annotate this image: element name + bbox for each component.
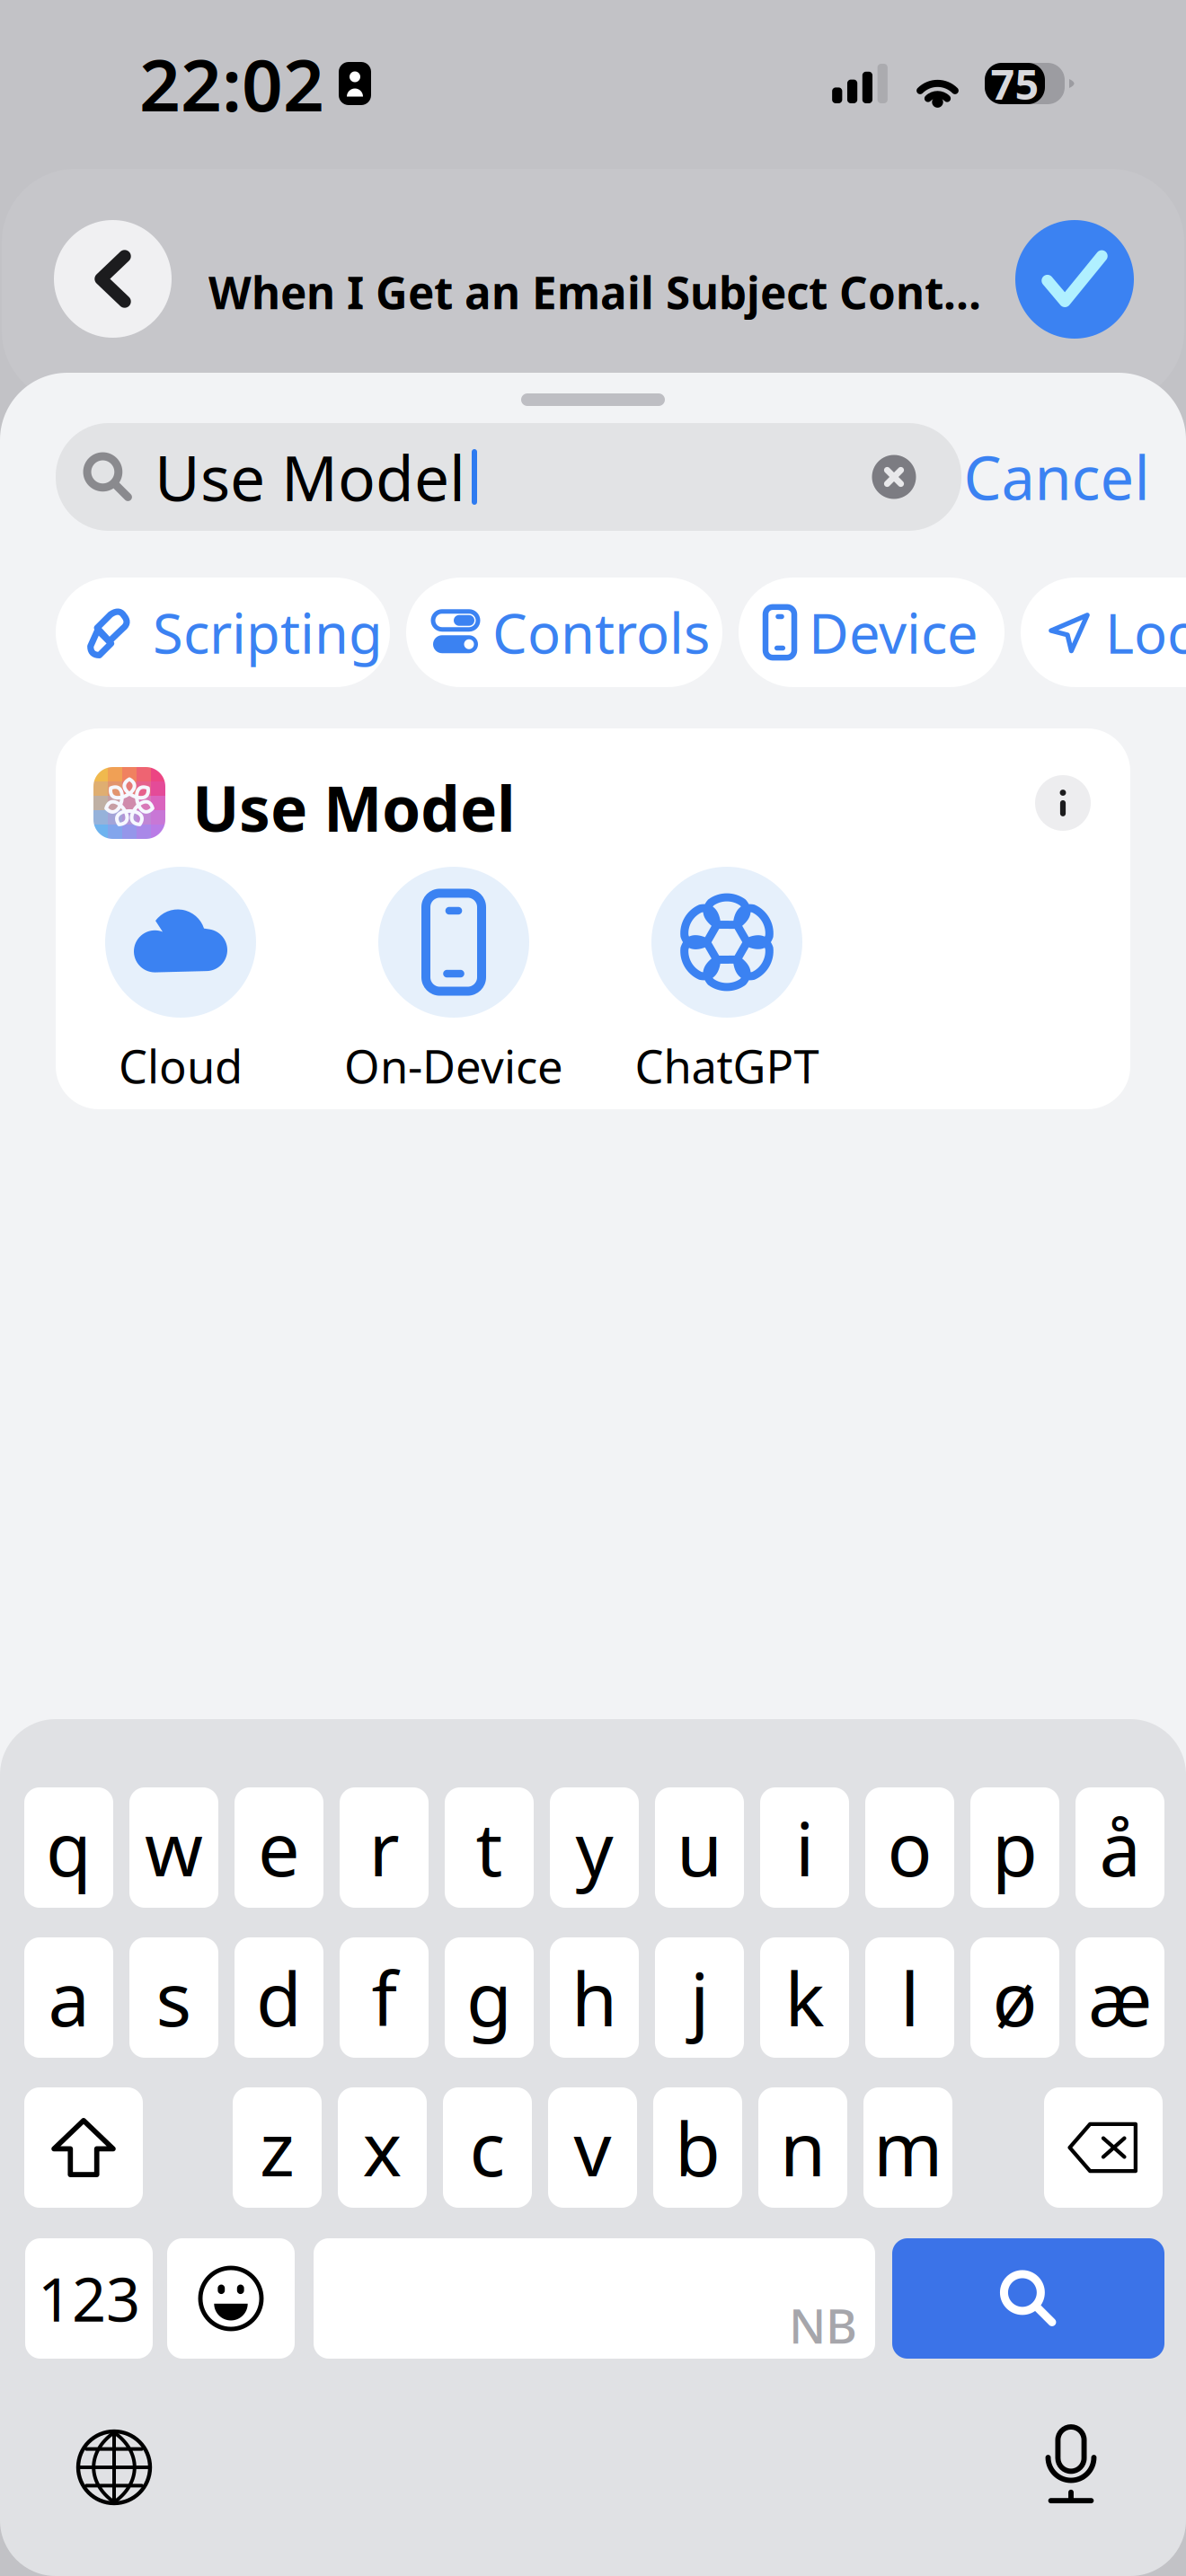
staticText: r xyxy=(369,1798,399,1897)
staticText: l xyxy=(900,1948,919,2047)
button[interactable]: i xyxy=(760,1787,849,1908)
button[interactable]: g xyxy=(445,1937,534,2058)
button[interactable]: o xyxy=(865,1787,954,1908)
button[interactable]: Numbers xyxy=(25,2238,153,2359)
button[interactable]: m xyxy=(863,2087,952,2208)
button[interactable]: Emoji xyxy=(167,2238,295,2359)
staticText: i xyxy=(795,1798,814,1897)
staticText: 75 xyxy=(991,56,1039,111)
staticText: d xyxy=(256,1948,302,2047)
staticText: w xyxy=(145,1798,203,1897)
button[interactable]: Scripting xyxy=(56,578,390,687)
button[interactable]: å xyxy=(1075,1787,1164,1908)
button[interactable]: e xyxy=(235,1787,323,1908)
button[interactable]: x xyxy=(338,2087,427,2208)
staticText: ChatGPT xyxy=(635,1036,819,1096)
button[interactable]: f xyxy=(340,1937,429,2058)
button[interactable]: Search xyxy=(892,2238,1164,2359)
staticText: u xyxy=(677,1798,722,1897)
button[interactable]: Delete xyxy=(1044,2087,1163,2208)
button[interactable]: Clear text xyxy=(853,423,935,531)
staticText: f xyxy=(372,1948,397,2047)
button[interactable]: ø xyxy=(970,1937,1059,2058)
button[interactable]: u xyxy=(655,1787,744,1908)
button[interactable]: l xyxy=(865,1937,954,2058)
staticText: h xyxy=(571,1948,617,2047)
staticText: Controls xyxy=(492,596,710,669)
staticText: æ xyxy=(1088,1948,1152,2047)
button[interactable]: Switch keyboard xyxy=(78,2431,150,2503)
button[interactable]: Controls xyxy=(406,578,722,687)
staticText: e xyxy=(258,1798,300,1897)
staticText: Device xyxy=(809,596,978,669)
staticText: j xyxy=(690,1948,709,2047)
staticText: m xyxy=(873,2098,943,2197)
button[interactable]: d xyxy=(235,1937,323,2058)
staticText: Use Model xyxy=(155,436,465,518)
staticText: v xyxy=(574,2098,611,2197)
staticText: 22:02 xyxy=(139,36,324,131)
staticText: g xyxy=(466,1948,512,2047)
button[interactable]: q xyxy=(24,1787,113,1908)
staticText: t xyxy=(476,1798,503,1897)
staticText: s xyxy=(156,1948,192,2047)
staticText: y xyxy=(575,1798,613,1897)
staticText: Location xyxy=(1105,596,1186,669)
staticText: Cancel xyxy=(964,437,1150,517)
staticText: p xyxy=(992,1798,1038,1897)
staticText: k xyxy=(785,1948,824,2047)
button[interactable]: Use Model xyxy=(56,728,1130,1109)
button[interactable]: a xyxy=(24,1937,113,2058)
button[interactable]: w xyxy=(129,1787,218,1908)
button[interactable]: v xyxy=(548,2087,637,2208)
staticText: Use Model xyxy=(192,766,516,849)
button[interactable]: b xyxy=(653,2087,742,2208)
button[interactable]: Back xyxy=(54,220,172,338)
button[interactable]: n xyxy=(758,2087,847,2208)
staticText: When I Get an Email Subject Cont… xyxy=(208,262,981,321)
staticText: q xyxy=(46,1798,92,1897)
button[interactable]: k xyxy=(760,1937,849,2058)
staticText: å xyxy=(1099,1798,1141,1897)
button[interactable]: z xyxy=(233,2087,322,2208)
button[interactable]: Device xyxy=(739,578,1005,687)
button[interactable]: Space xyxy=(314,2238,875,2359)
staticText: Scripting xyxy=(153,596,383,669)
staticText: 123 xyxy=(38,2259,140,2338)
button[interactable]: Location xyxy=(1021,578,1186,687)
staticText: z xyxy=(260,2098,295,2197)
button[interactable]: æ xyxy=(1075,1937,1164,2058)
staticText: b xyxy=(675,2098,721,2197)
button[interactable]: p xyxy=(970,1787,1059,1908)
button[interactable]: Shift xyxy=(24,2087,143,2208)
button[interactable]: c xyxy=(443,2087,532,2208)
button[interactable]: t xyxy=(445,1787,534,1908)
staticText: a xyxy=(48,1948,89,2047)
staticText: On-Device xyxy=(344,1036,563,1096)
button[interactable]: Cancel xyxy=(960,423,1154,531)
staticText: Cloud xyxy=(119,1036,243,1096)
staticText: NB xyxy=(789,2293,857,2357)
button[interactable]: y xyxy=(550,1787,639,1908)
button[interactable]: s xyxy=(129,1937,218,2058)
staticText: ø xyxy=(992,1948,1037,2047)
button[interactable]: Dictate xyxy=(1046,2427,1096,2503)
button[interactable]: j xyxy=(655,1937,744,2058)
button[interactable]: h xyxy=(550,1937,639,2058)
staticText: n xyxy=(780,2098,826,2197)
button[interactable]: Done xyxy=(1015,220,1134,339)
staticText: c xyxy=(469,2098,505,2197)
staticText: x xyxy=(363,2098,402,2197)
staticText: o xyxy=(887,1798,932,1897)
button[interactable]: r xyxy=(340,1787,429,1908)
